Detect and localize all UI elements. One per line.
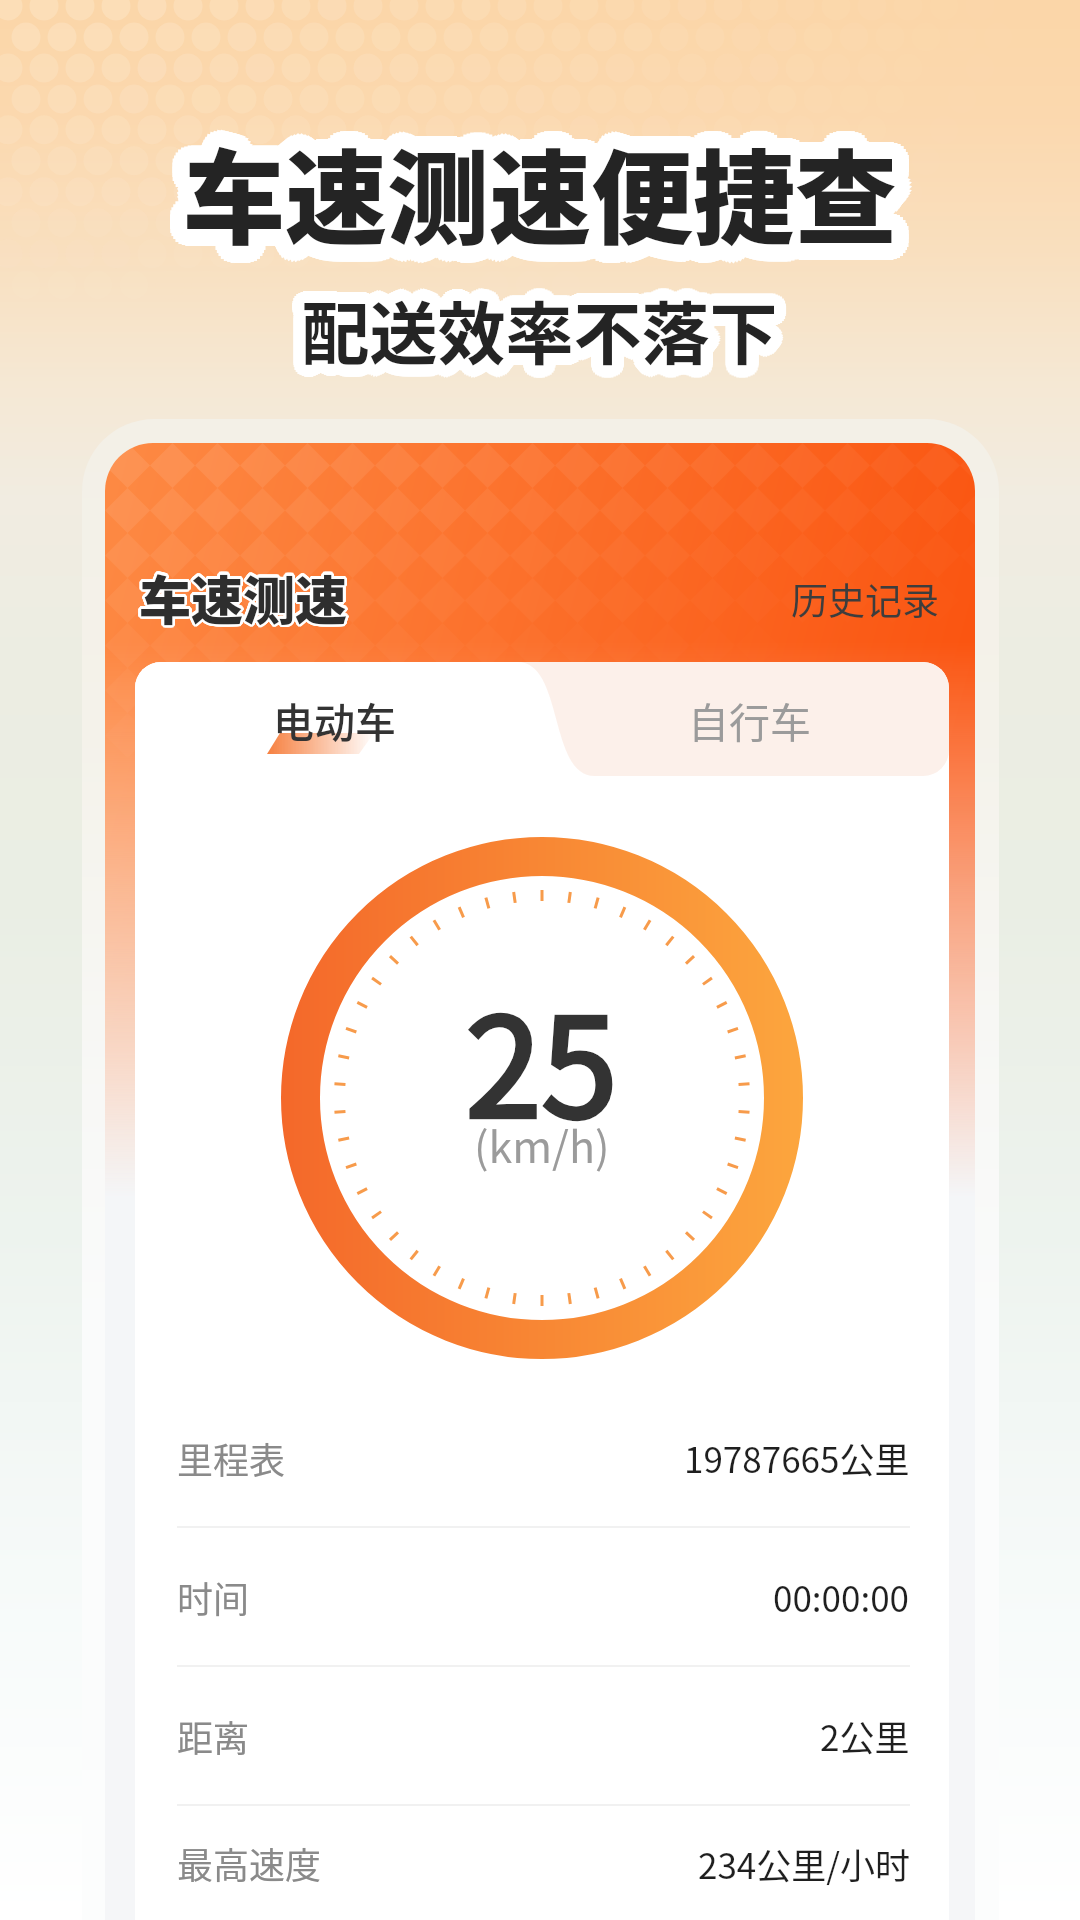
button[interactable]: 里程表 xyxy=(135,1389,949,1528)
staticText: 234公里/小时 xyxy=(698,1838,910,1889)
button[interactable]: 距离 xyxy=(135,1667,949,1806)
staticText: 里程表 xyxy=(177,1432,286,1484)
button[interactable]: 最高速度 xyxy=(135,1806,949,1920)
button[interactable]: 自行车 xyxy=(550,662,949,776)
staticText: 距离 xyxy=(177,1710,250,1762)
staticText: 时间 xyxy=(177,1571,250,1623)
staticText: 电动车 xyxy=(273,690,396,749)
staticText: 最高速度 xyxy=(177,1837,322,1889)
staticText: 19787665公里 xyxy=(684,1432,910,1483)
button[interactable]: 时间 xyxy=(135,1528,949,1667)
button[interactable]: 电动车 xyxy=(135,662,534,776)
staticText: 自行车 xyxy=(688,690,811,749)
staticText: 00:00:00 xyxy=(773,1571,910,1622)
button[interactable]: 历史记录 xyxy=(775,543,955,623)
staticText: 2公里 xyxy=(820,1710,910,1761)
